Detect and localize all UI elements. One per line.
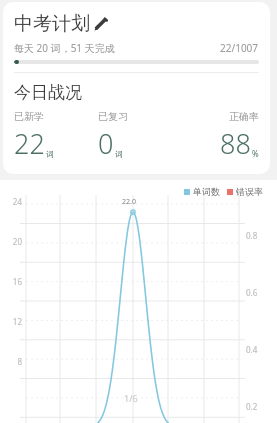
- staticText: 8: [6, 356, 22, 367]
- staticText: 词: [115, 149, 123, 159]
- staticText: 0.8: [246, 230, 258, 241]
- staticText: 24: [6, 196, 22, 207]
- button[interactable]: 中考计划: [14, 12, 109, 36]
- staticText: 正确率: [229, 110, 259, 123]
- staticText: 22/1007: [220, 41, 259, 55]
- staticText: 0.2: [246, 401, 258, 412]
- staticText: 今日战况: [14, 82, 82, 103]
- staticText: 22: [14, 125, 45, 162]
- button[interactable]: 单词数: [184, 186, 263, 197]
- staticText: 0.6: [246, 287, 258, 298]
- staticText: 1/6: [124, 392, 138, 404]
- staticText: 22.0: [122, 197, 136, 207]
- staticText: 已新学: [14, 110, 44, 123]
- button[interactable]: 已复习: [98, 110, 182, 162]
- button[interactable]: Edit plan: [93, 16, 109, 32]
- staticText: 0: [98, 125, 114, 162]
- staticText: 单词数: [193, 186, 220, 197]
- staticText: 20: [6, 236, 22, 247]
- staticText: 词: [46, 149, 54, 159]
- staticText: 每天 20 词，51 天完成: [14, 41, 115, 55]
- staticText: 88: [220, 125, 251, 162]
- staticText: 已复习: [98, 110, 128, 123]
- button[interactable]: 正确率: [182, 110, 259, 162]
- button[interactable]: 已新学: [14, 110, 98, 162]
- staticText: 错误率: [236, 186, 263, 197]
- staticText: 12: [6, 316, 22, 327]
- staticText: 中考计划: [14, 12, 90, 36]
- staticText: 0.4: [246, 344, 258, 355]
- staticText: %: [252, 148, 259, 159]
- staticText: 16: [6, 276, 22, 287]
